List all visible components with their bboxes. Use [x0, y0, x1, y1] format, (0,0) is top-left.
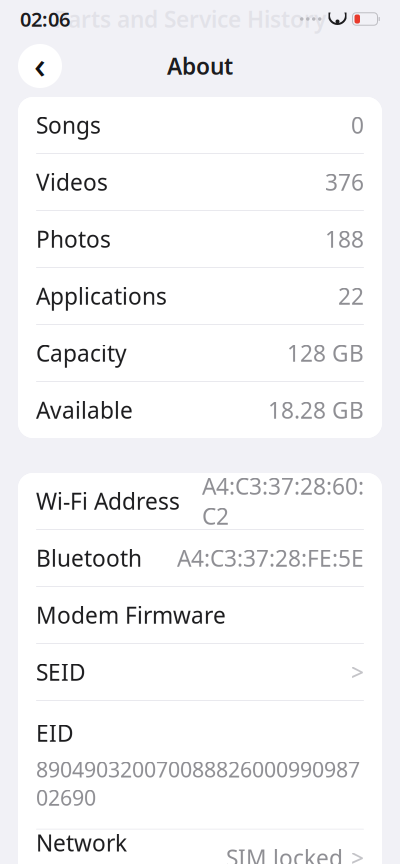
staticText: A4:C3:37:28:60:C2: [202, 471, 364, 531]
staticText: 0: [351, 110, 364, 140]
staticText: Applications: [36, 281, 167, 311]
staticText: 02:06: [20, 6, 70, 32]
button[interactable]: Back: [18, 41, 62, 91]
button[interactable]: Bluetooth: [18, 530, 382, 586]
staticText: Songs: [36, 110, 101, 140]
staticText: SEID: [36, 657, 86, 687]
button[interactable]: EID: [18, 701, 382, 829]
staticText: Bluetooth: [36, 543, 142, 573]
staticText: Modem Firmware: [36, 600, 226, 630]
button[interactable]: Wi-Fi Address: [18, 473, 382, 529]
button[interactable]: Songs: [18, 97, 382, 153]
button[interactable]: Modem Firmware: [18, 587, 382, 643]
button[interactable]: Network Provider Lock: [18, 830, 382, 864]
staticText: SIM locked: [226, 843, 343, 864]
staticText: Videos: [36, 167, 108, 197]
button[interactable]: Videos: [18, 154, 382, 210]
staticText: A4:C3:37:28:FE:5E: [177, 543, 364, 573]
button[interactable]: SEID: [18, 644, 382, 700]
staticText: ‹: [34, 41, 46, 88]
staticText: Network Provider Lock: [36, 828, 181, 864]
button[interactable]: Available: [18, 382, 382, 438]
staticText: Available: [36, 395, 133, 425]
button[interactable]: Applications: [18, 268, 382, 324]
staticText: Photos: [36, 224, 111, 254]
button[interactable]: Capacity: [18, 325, 382, 381]
staticText: >: [351, 843, 364, 864]
staticText: 128 GB: [287, 338, 364, 368]
staticText: >: [351, 657, 364, 687]
staticText: Parts and Service History: [54, 4, 326, 34]
button[interactable]: Photos: [18, 211, 382, 267]
staticText: 89049032007008882600099098702690: [36, 755, 360, 812]
staticText: EID: [36, 718, 74, 748]
staticText: Wi-Fi Address: [36, 486, 180, 516]
staticText: About: [167, 51, 233, 81]
staticText: Capacity: [36, 338, 127, 368]
staticText: 376: [325, 167, 364, 197]
staticText: 22: [338, 281, 364, 311]
staticText: 18.28 GB: [268, 395, 364, 425]
staticText: 188: [325, 224, 364, 254]
